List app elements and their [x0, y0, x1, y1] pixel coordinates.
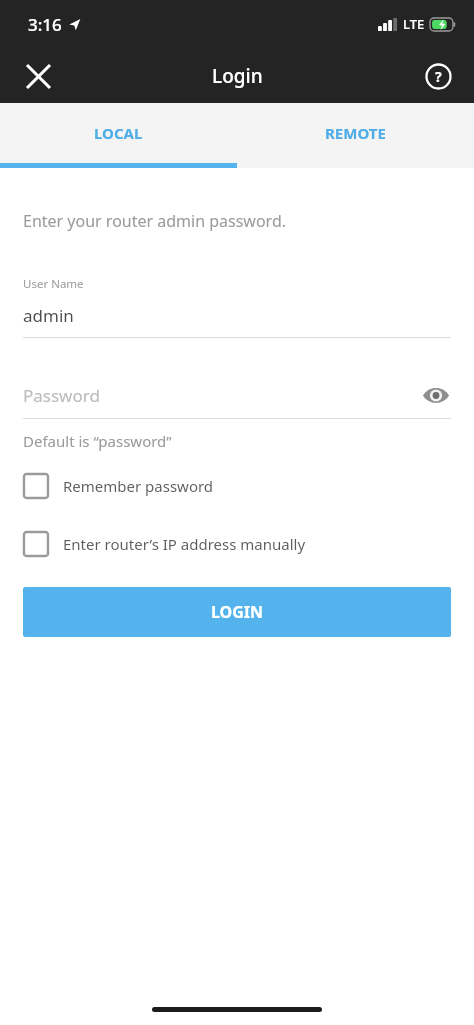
- staticText: Login: [212, 63, 263, 89]
- staticText: LTE: [403, 15, 425, 33]
- staticText: User Name: [23, 276, 84, 292]
- button[interactable]: LOGIN: [23, 587, 451, 637]
- button[interactable]: Close: [12, 50, 64, 102]
- button[interactable]: Password: [23, 380, 451, 410]
- button[interactable]: admin: [23, 304, 451, 327]
- staticText: Enter router’s IP address manually: [63, 534, 306, 554]
- staticText: Default is “password”: [23, 431, 172, 451]
- staticText: 3:16: [28, 13, 62, 36]
- button[interactable]: Help: [412, 50, 464, 102]
- staticText: Enter your router admin password.: [23, 210, 287, 232]
- button[interactable]: Show password: [421, 380, 451, 410]
- staticText: REMOTE: [325, 123, 386, 143]
- staticText: LOGIN: [211, 601, 264, 623]
- button[interactable]: Remember password: [23, 473, 451, 499]
- button[interactable]: REMOTE: [237, 103, 474, 163]
- staticText: Password: [23, 384, 100, 407]
- staticText: admin: [23, 304, 74, 327]
- staticText: ?: [435, 67, 442, 86]
- staticText: Remember password: [63, 476, 214, 496]
- button[interactable]: Enter router’s IP address manually: [23, 531, 451, 557]
- staticText: LOCAL: [94, 123, 143, 143]
- button[interactable]: LOCAL: [0, 103, 237, 163]
